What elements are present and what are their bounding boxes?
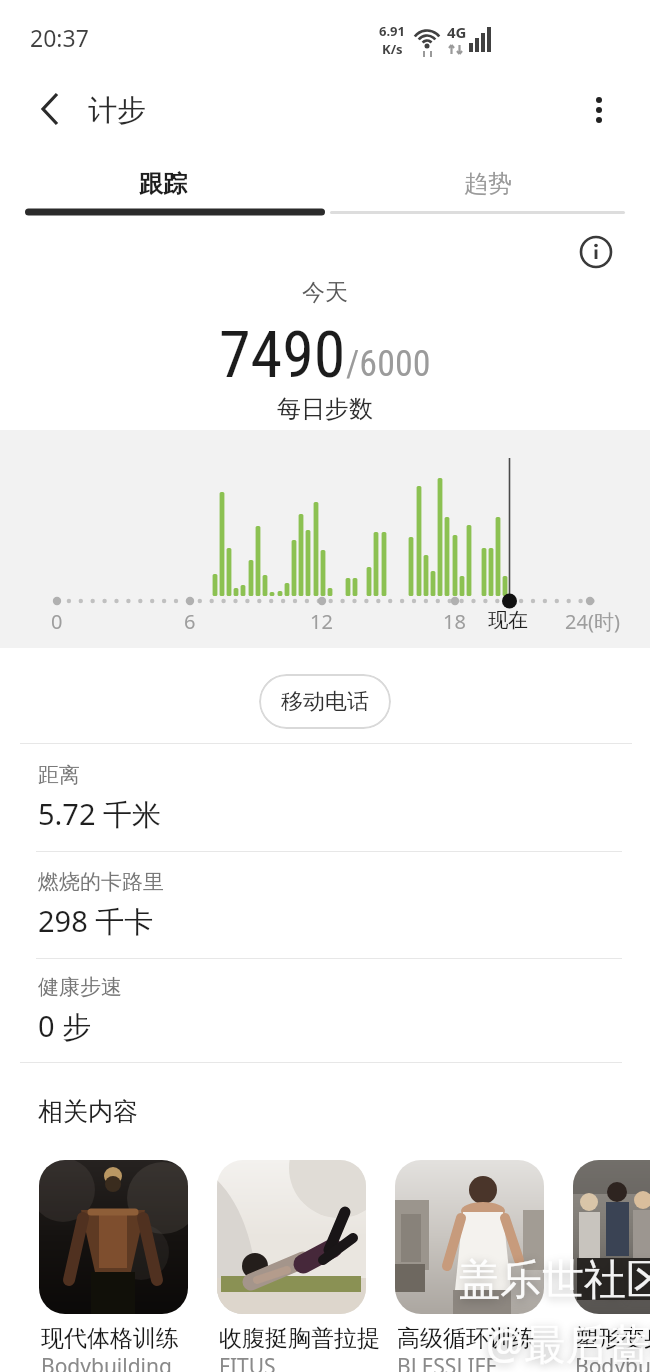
button[interactable]: 燃烧的卡路里 — [38, 851, 630, 958]
staticText: @最后蔷薇 — [486, 1314, 650, 1371]
staticText: 相关内容 — [38, 1096, 138, 1127]
staticText: 20:37 — [30, 22, 89, 53]
staticText: /6000 — [346, 343, 431, 385]
staticText: 移动电话 — [281, 688, 369, 716]
button[interactable] — [578, 90, 620, 132]
staticText: 18 — [443, 608, 466, 635]
staticText: 0 步 — [38, 1006, 92, 1046]
staticText: 298 千卡 — [38, 901, 154, 941]
staticText: 塑形变身训练 — [575, 1324, 650, 1353]
staticText: 每日步数 — [0, 394, 650, 424]
staticText: 12 — [310, 608, 333, 635]
staticText: 现在 — [488, 608, 528, 633]
staticText: 6.91 — [379, 22, 405, 40]
staticText: 现代体格训练 — [41, 1324, 179, 1353]
staticText: 跟踪 — [139, 169, 187, 199]
button[interactable]: 跟踪 — [0, 150, 325, 218]
staticText: 0 — [51, 608, 63, 635]
staticText: 盖乐世社区 — [458, 1254, 650, 1307]
button[interactable] — [574, 230, 618, 274]
staticText: 趋势 — [464, 169, 512, 199]
staticText: 燃烧的卡路里 — [38, 869, 164, 895]
button[interactable] — [573, 1160, 650, 1314]
button[interactable] — [395, 1160, 544, 1314]
staticText: 4G — [447, 22, 467, 42]
staticText: 24(时) — [565, 608, 620, 635]
staticText: 收腹挺胸普拉提 — [219, 1324, 380, 1353]
staticText: 计步 — [88, 92, 146, 129]
staticText: Bodybuildi — [575, 1352, 650, 1372]
staticText: 健康步速 — [38, 974, 122, 1000]
button[interactable]: 距离 — [38, 744, 630, 851]
staticText: 高级循环训练 — [397, 1324, 535, 1353]
button[interactable]: 趋势 — [325, 150, 650, 218]
button[interactable]: 健康步速 — [38, 958, 630, 1062]
staticText: 7490 — [219, 318, 346, 393]
button[interactable] — [217, 1160, 366, 1314]
staticText: Bodybuilding — [41, 1352, 172, 1372]
staticText: BLESSLIFE — [397, 1352, 498, 1372]
button[interactable]: 移动电话 — [259, 674, 391, 729]
staticText: 5.72 千米 — [38, 794, 162, 834]
button[interactable] — [39, 1160, 188, 1314]
staticText: K/s — [382, 40, 403, 58]
staticText: 6 — [184, 608, 196, 635]
staticText: 今天 — [0, 278, 650, 307]
staticText: FITUS — [219, 1352, 276, 1372]
staticText: 距离 — [38, 762, 80, 788]
button[interactable] — [26, 88, 74, 132]
